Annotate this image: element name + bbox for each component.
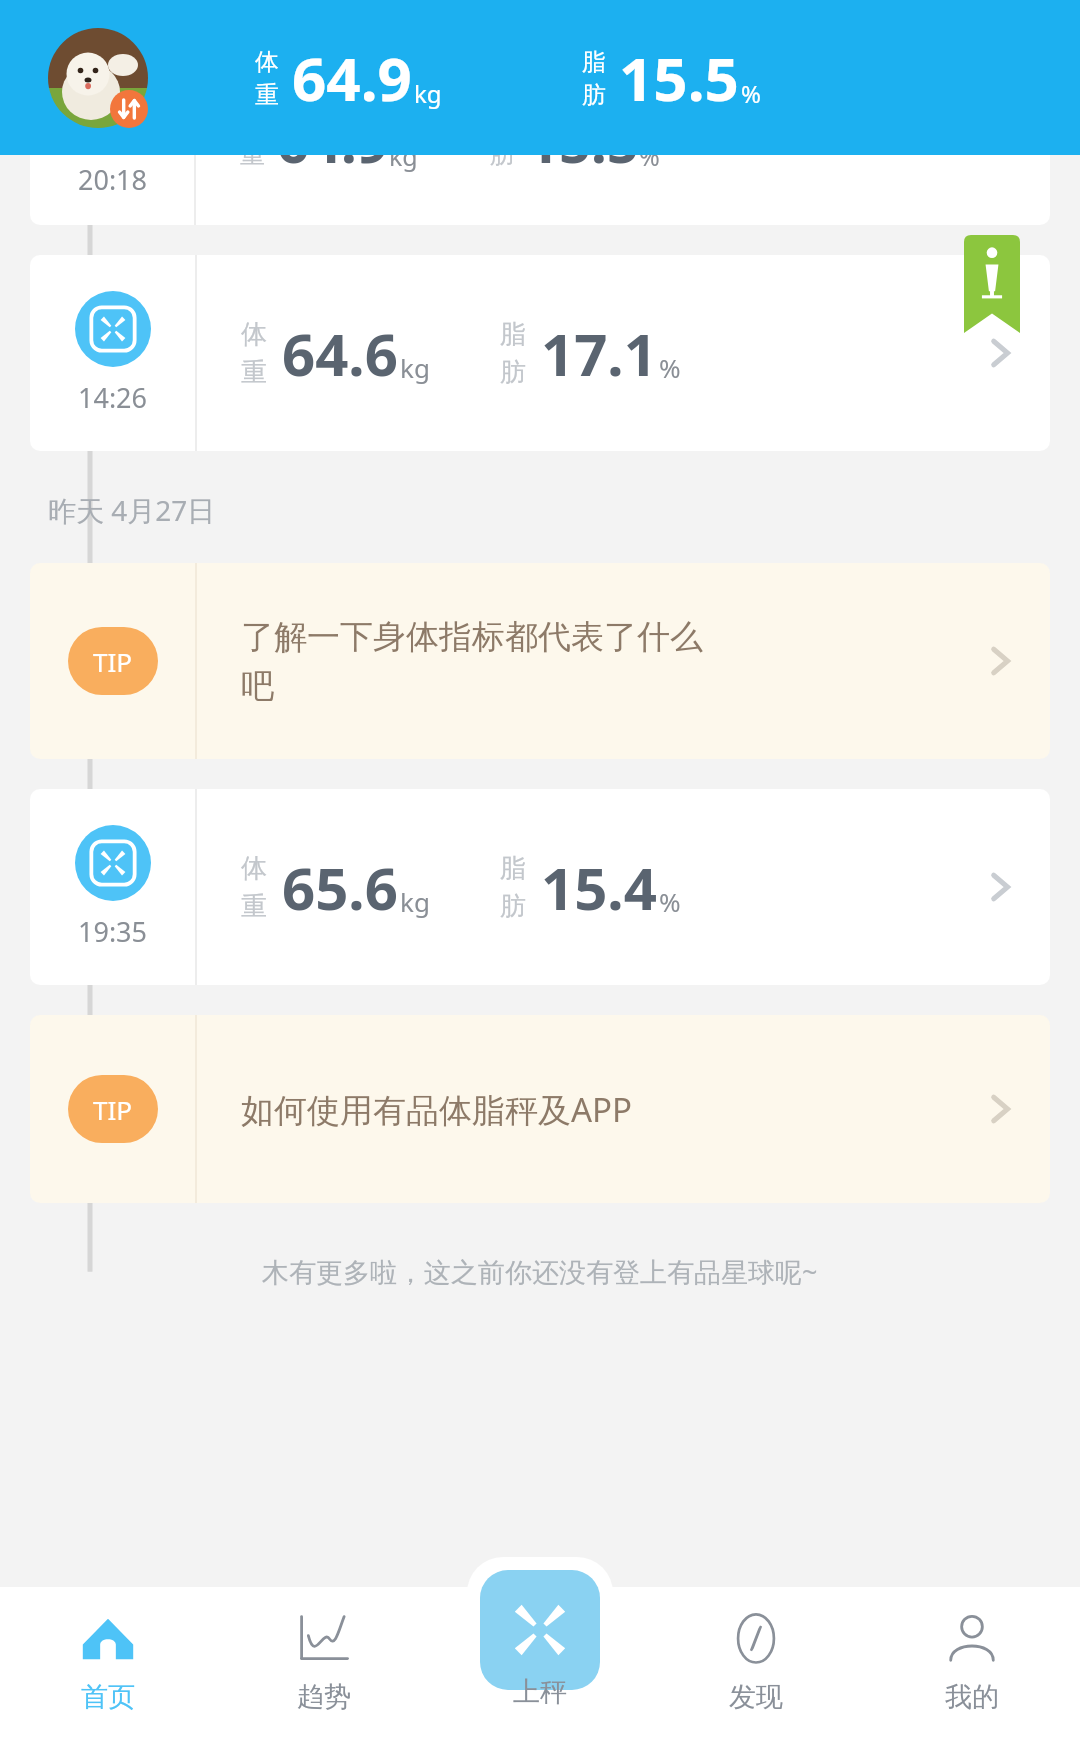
staticText: 肪 [490, 155, 515, 170]
staticText: 肪 [500, 890, 526, 923]
staticText: 15.4 [541, 848, 657, 927]
staticText: 64.6 [282, 314, 398, 393]
staticText: 体 [241, 318, 267, 351]
button[interactable]: 趋势 [216, 1587, 432, 1737]
button[interactable]: 上秤 Weigh in [480, 1570, 600, 1690]
button[interactable]: 20:18 [30, 155, 1050, 225]
staticText: 昨天 4月27日 [48, 491, 216, 529]
staticText: % [639, 155, 660, 173]
staticText: 体 [255, 47, 279, 77]
staticText: kg [389, 155, 418, 173]
staticText: 肪 [582, 80, 606, 110]
staticText: 17.1 [541, 314, 657, 393]
button[interactable]: 19:35 [30, 789, 1050, 985]
button[interactable]: TIP [30, 1015, 1050, 1203]
staticText: 14:26 [78, 379, 148, 416]
staticText: 19:35 [78, 913, 148, 950]
staticText: 上秤 [513, 1675, 567, 1709]
staticText: kg [400, 350, 430, 385]
staticText: 65.6 [282, 848, 398, 927]
staticText: 我的 [945, 1680, 999, 1714]
staticText: 了解一下身体指标都代表了什么 吧 [241, 616, 703, 707]
staticText: TIP [93, 644, 133, 679]
staticText: 重 [240, 155, 265, 170]
staticText: 64.9 [292, 37, 412, 119]
staticText: 20:18 [78, 161, 148, 198]
staticText: kg [400, 884, 430, 919]
button[interactable]: Profile avatar, switch user [48, 28, 148, 128]
staticText: 体 [241, 852, 267, 885]
staticText: TIP [93, 1092, 133, 1127]
staticText: 肪 [500, 356, 526, 389]
staticText: 脂 [500, 318, 526, 351]
staticText: kg [414, 77, 442, 110]
button[interactable]: 发现 [648, 1587, 864, 1737]
staticText: 趋势 [297, 1680, 351, 1714]
staticText: 木有更多啦，这之前你还没有登上有品星球呢~ [262, 1253, 818, 1290]
button[interactable]: 我的 [864, 1587, 1080, 1737]
staticText: 15.5 [527, 155, 639, 173]
button[interactable]: TIP [30, 563, 1050, 759]
staticText: 重 [255, 80, 279, 110]
staticText: 64.9 [277, 155, 389, 173]
staticText: % [659, 884, 681, 919]
button[interactable]: 14:26 [30, 255, 1050, 451]
button[interactable]: 首页 [0, 1587, 216, 1737]
staticText: 如何使用有品体脂秤及APP [241, 1087, 633, 1132]
staticText: 重 [241, 890, 267, 923]
staticText: 重 [241, 356, 267, 389]
staticText: 首页 [81, 1680, 135, 1714]
staticText: 脂 [500, 852, 526, 885]
staticText: 15.5 [619, 37, 739, 119]
staticText: 发现 [729, 1680, 783, 1714]
staticText: 脂 [582, 47, 606, 77]
staticText: % [741, 77, 761, 110]
staticText: % [659, 350, 681, 385]
